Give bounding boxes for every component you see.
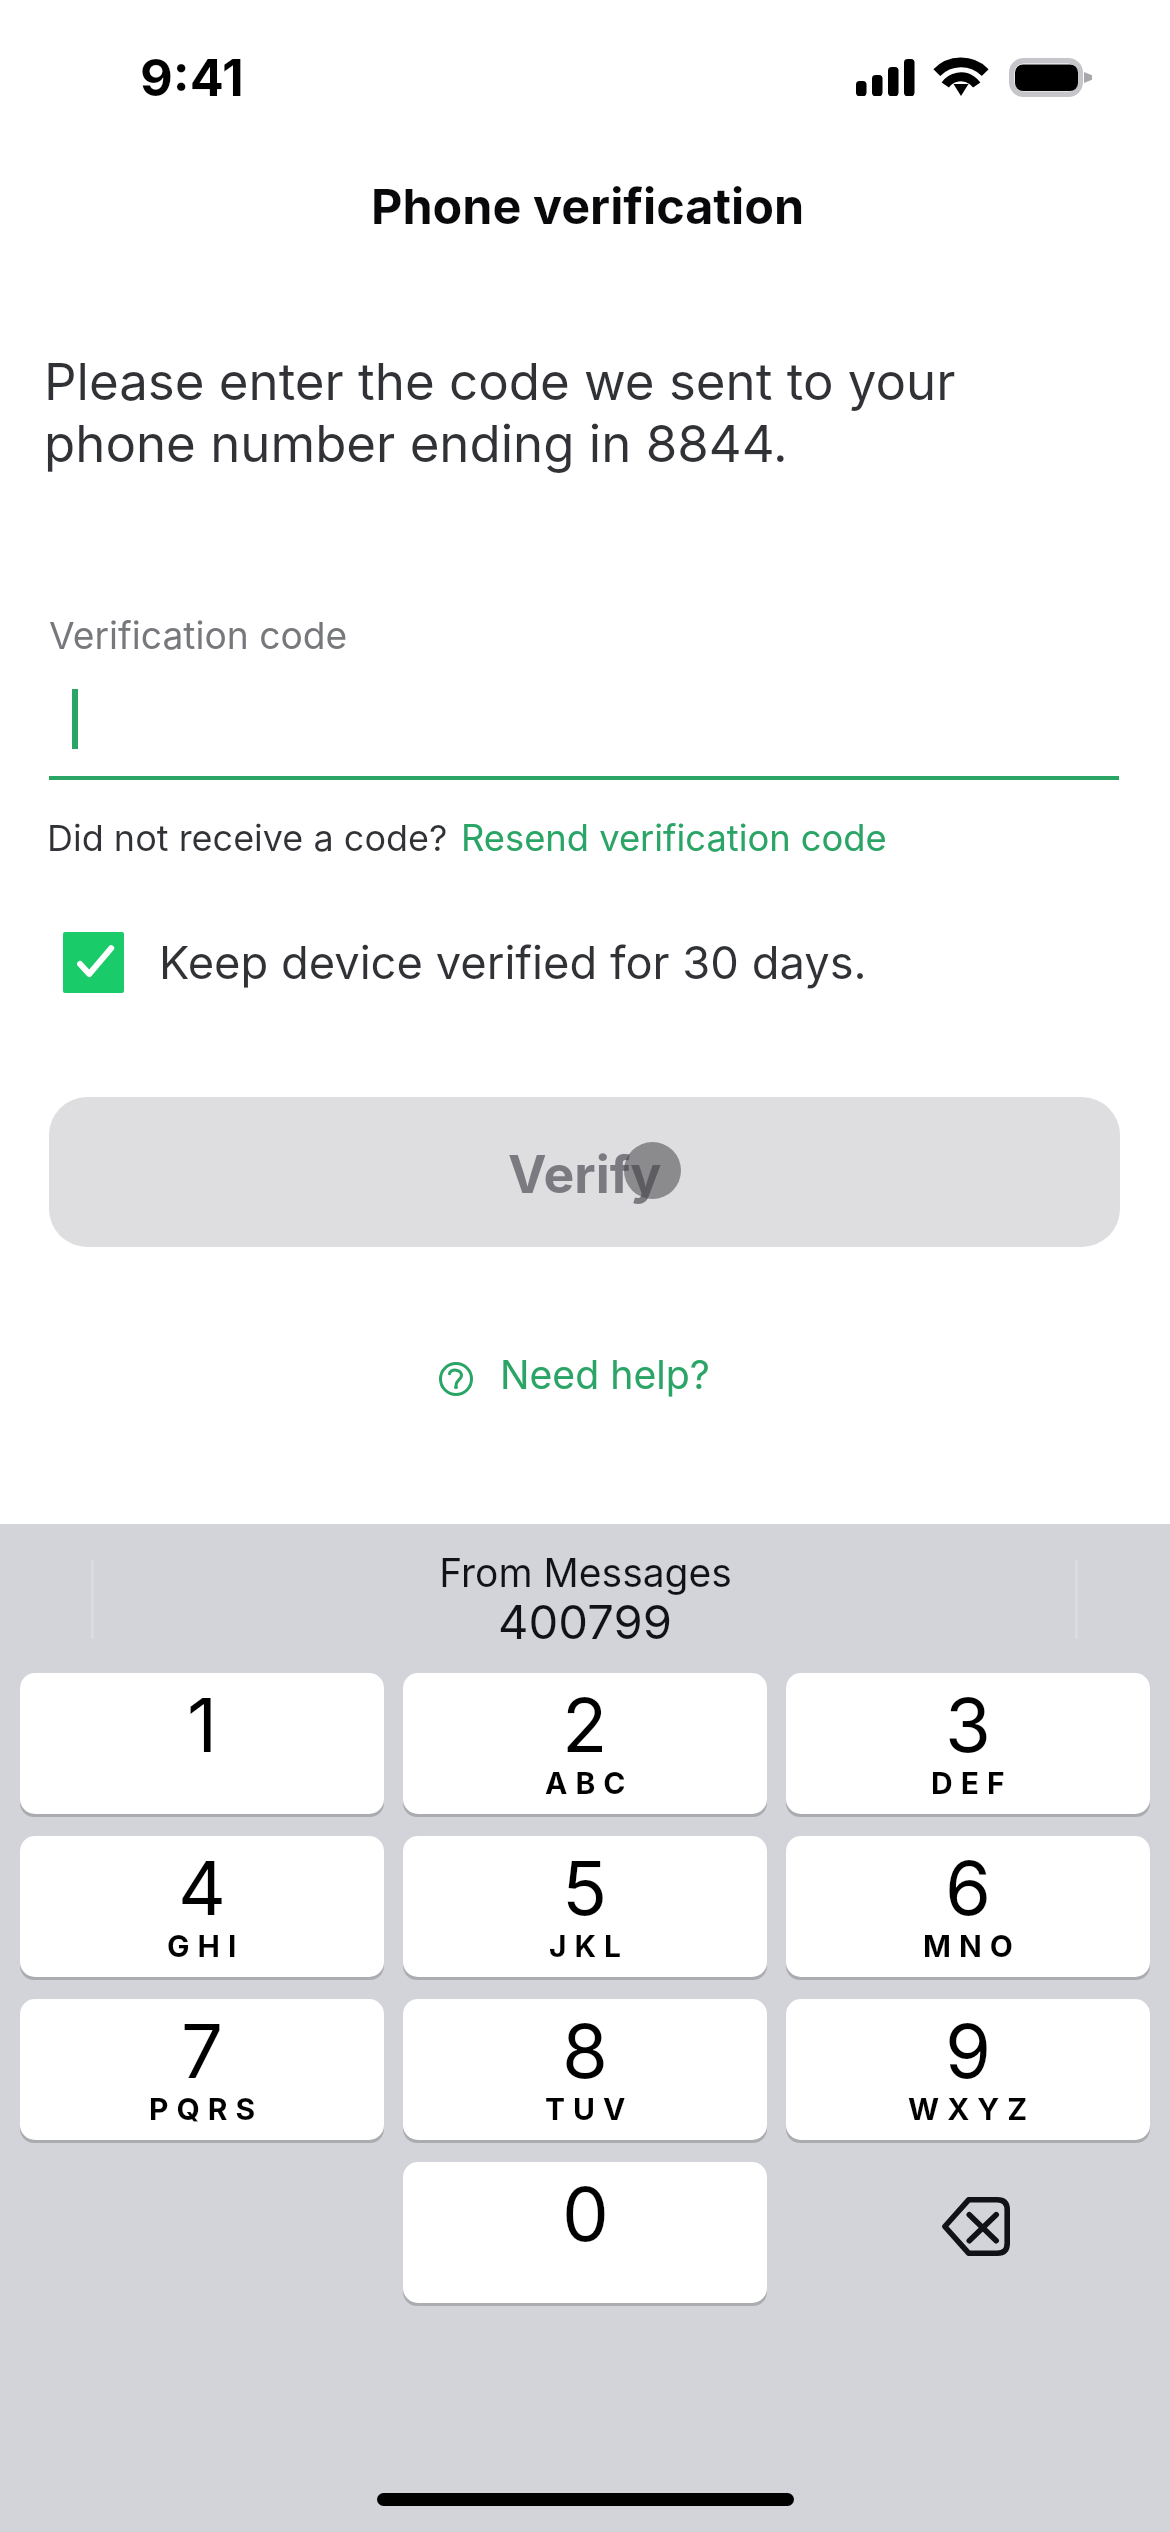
- button[interactable]: 6: [786, 1836, 1150, 1977]
- staticText: Please enter the code we sent to your ph…: [44, 351, 984, 474]
- staticText: TUV: [545, 2091, 634, 2127]
- button[interactable]: Verify: [49, 1097, 1120, 1247]
- staticText: DEF: [931, 1765, 1013, 1801]
- button[interactable]: 1: [20, 1673, 384, 1814]
- button[interactable]: 7: [20, 1999, 384, 2140]
- button[interactable]: 5: [403, 1836, 767, 1977]
- staticText: 8: [562, 2006, 608, 2096]
- staticText: 3: [945, 1680, 991, 1770]
- staticText: Verify: [508, 1143, 662, 1206]
- staticText: 2: [562, 1680, 608, 1770]
- staticText: PQRS: [149, 2091, 264, 2127]
- staticText: 6: [945, 1843, 992, 1933]
- staticText: JKL: [549, 1928, 630, 1964]
- button[interactable]: 3: [786, 1673, 1150, 1814]
- staticText: 4: [178, 1843, 226, 1933]
- staticText: MNO: [923, 1928, 1021, 1964]
- button[interactable]: 2: [403, 1673, 767, 1814]
- button[interactable]: 4: [20, 1836, 384, 1977]
- staticText: Keep device verified for 30 days.: [159, 935, 867, 990]
- button[interactable]: 0: [403, 2162, 767, 2303]
- button[interactable]: 8: [403, 1999, 767, 2140]
- staticText: From Messages: [439, 1549, 732, 1596]
- staticText: Need help?: [500, 1351, 710, 1398]
- staticText: ABC: [545, 1765, 634, 1801]
- button[interactable]: Keep device verified for 30 days.: [63, 932, 867, 993]
- staticText: Phone verification: [371, 177, 805, 236]
- button[interactable]: Delete: [786, 2162, 1150, 2303]
- staticText: 9:41: [140, 47, 244, 108]
- staticText: 7: [181, 2006, 224, 2096]
- staticText: 9: [945, 2006, 992, 2096]
- staticText: 5: [562, 1843, 608, 1933]
- staticText: Verification code: [49, 613, 348, 658]
- button[interactable]: 9: [786, 1999, 1150, 2140]
- staticText: 0: [562, 2169, 609, 2259]
- staticText: WXYZ: [908, 2091, 1036, 2127]
- button[interactable]: Resend verification code: [461, 816, 887, 860]
- staticText: 400799: [498, 1593, 672, 1650]
- staticText: 1: [187, 1680, 218, 1770]
- button[interactable]: Need help?: [438, 1351, 710, 1398]
- staticText: Resend verification code: [461, 816, 887, 860]
- staticText: GHI: [167, 1928, 245, 1964]
- staticText: Did not receive a code?: [47, 816, 448, 860]
